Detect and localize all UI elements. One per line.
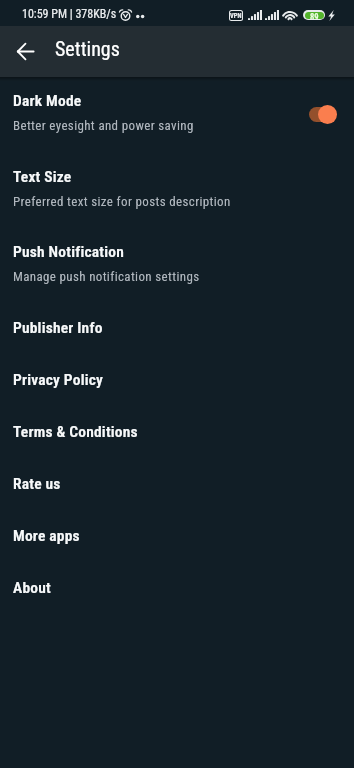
staticText: Terms & Conditions bbox=[13, 423, 138, 441]
button[interactable]: Dark Mode toggle bbox=[308, 103, 338, 125]
button[interactable]: Push Notification bbox=[0, 234, 354, 310]
staticText: VPN bbox=[230, 12, 242, 20]
staticText: 89 bbox=[310, 12, 319, 19]
button[interactable]: Back bbox=[9, 35, 42, 68]
button[interactable]: About bbox=[0, 570, 354, 622]
button[interactable]: Terms & Conditions bbox=[0, 414, 354, 466]
staticText: Better eyesight and power saving bbox=[13, 118, 194, 133]
staticText: Settings bbox=[55, 37, 120, 60]
button[interactable]: Publisher Info bbox=[0, 310, 354, 362]
staticText: 10:59 PM | 378KB/s bbox=[22, 7, 117, 21]
staticText: Rate us bbox=[13, 475, 61, 493]
button[interactable]: Dark Mode bbox=[0, 83, 354, 159]
staticText: Text Size bbox=[13, 168, 72, 186]
staticText: Privacy Policy bbox=[13, 371, 104, 389]
staticText: Publisher Info bbox=[13, 319, 103, 337]
button[interactable]: Text Size bbox=[0, 159, 354, 234]
button[interactable]: Privacy Policy bbox=[0, 362, 354, 414]
staticText: Preferred text size for posts descriptio… bbox=[13, 194, 231, 209]
staticText: More apps bbox=[13, 527, 80, 545]
staticText: Push Notification bbox=[13, 243, 124, 261]
staticText: About bbox=[13, 579, 51, 597]
staticText: Dark Mode bbox=[13, 92, 82, 110]
button[interactable]: Rate us bbox=[0, 466, 354, 518]
staticText: Manage push notification settings bbox=[13, 269, 200, 284]
button[interactable]: More apps bbox=[0, 518, 354, 570]
